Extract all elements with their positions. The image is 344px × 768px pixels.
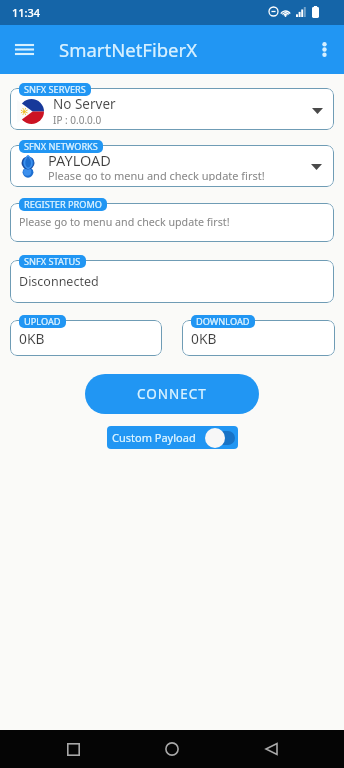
button[interactable]: Custom Payload <box>107 426 238 449</box>
staticText: UPLOAD <box>24 315 61 328</box>
button[interactable]: Custom Payload switch <box>205 428 235 448</box>
staticText: 0KB <box>191 329 217 348</box>
button[interactable]: Please go to menu and check update first… <box>10 203 334 242</box>
staticText: PAYLOAD <box>48 150 111 170</box>
staticText: SFNX NETWORKS <box>24 140 98 153</box>
button[interactable]: No Server <box>10 88 334 130</box>
staticText: No Server <box>53 95 116 113</box>
staticText: 0KB <box>19 329 45 348</box>
staticText: 11:34 <box>12 5 41 20</box>
staticText: CONNECT <box>137 385 207 403</box>
button[interactable]: More options <box>304 25 344 74</box>
staticText: SNFX STATUS <box>24 255 81 268</box>
button[interactable]: Navigation menu <box>0 25 48 74</box>
button[interactable]: Recents <box>53 730 93 768</box>
staticText: Please go to menu and check update first… <box>19 215 326 230</box>
staticText: REGISTER PROMO <box>24 198 102 211</box>
button[interactable]: Back <box>251 730 291 768</box>
staticText: Please go to menu and check update first… <box>48 168 265 181</box>
button[interactable]: 0KB <box>10 320 162 356</box>
button[interactable]: CONNECT <box>85 374 259 414</box>
button[interactable]: PAYLOAD <box>10 145 334 187</box>
staticText: SmartNetFiberX <box>59 37 197 62</box>
staticText: Custom Payload <box>112 430 196 445</box>
button[interactable]: 0KB <box>182 320 335 356</box>
button[interactable]: Home <box>152 730 192 768</box>
staticText: DOWNLOAD <box>196 315 250 328</box>
staticText: IP : 0.0.0.0 <box>53 113 102 127</box>
staticText: SNFX SERVERS <box>24 83 86 96</box>
staticText: Disconnected <box>19 273 326 290</box>
button[interactable]: Disconnected <box>10 260 334 303</box>
